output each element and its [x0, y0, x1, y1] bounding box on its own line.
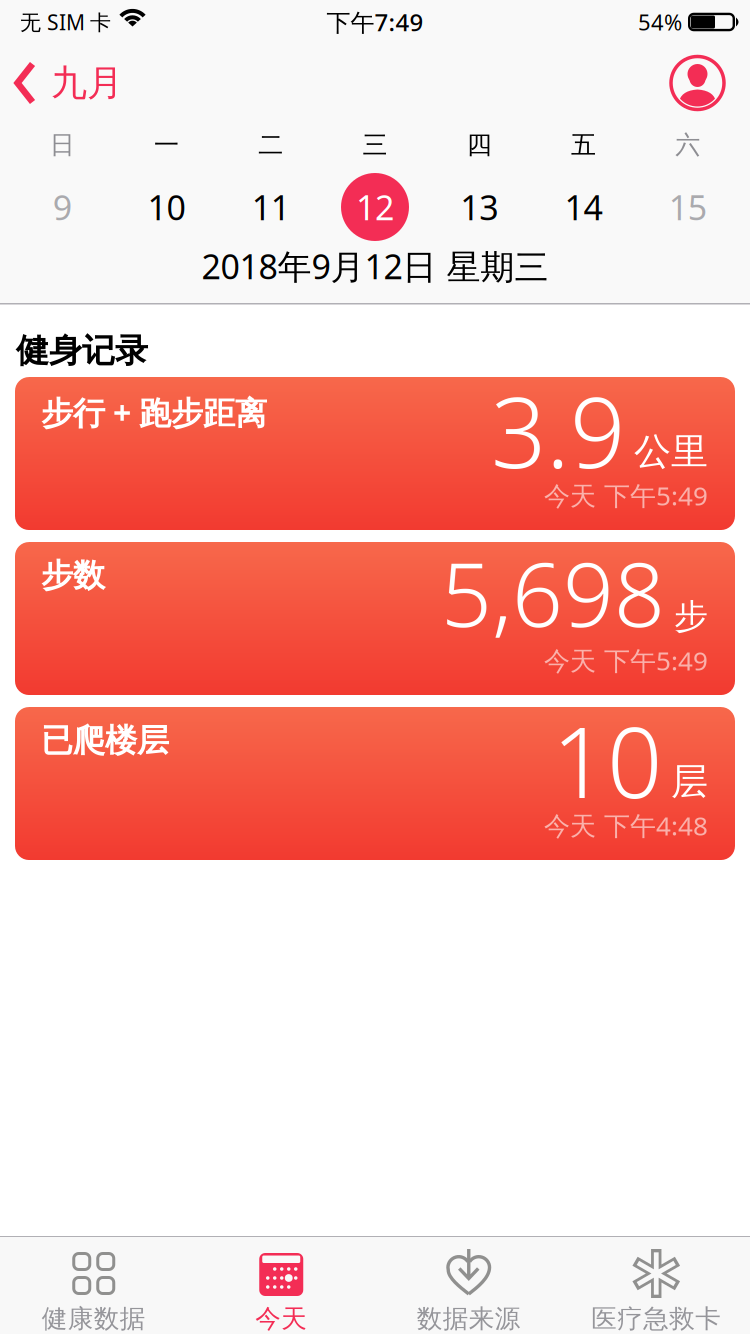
staticText: 9 — [53, 184, 72, 230]
staticText: 健康数据 — [42, 1303, 146, 1334]
staticText: 11 — [252, 184, 290, 230]
staticText: 一 — [154, 130, 179, 160]
button[interactable]: 11 — [219, 169, 323, 245]
staticText: 5,698 — [441, 533, 665, 651]
staticText: 2018年9月12日 星期三 — [201, 243, 548, 289]
staticText: 今天 下午5:49 — [544, 643, 708, 677]
staticText: 三 — [362, 130, 387, 160]
button[interactable]: 12 — [323, 169, 427, 245]
staticText: 13 — [460, 184, 498, 230]
button[interactable]: 今天 — [187, 1237, 375, 1334]
button[interactable]: 13 — [427, 169, 531, 245]
button[interactable]: 健康数据 — [0, 1237, 187, 1334]
staticText: 14 — [565, 184, 603, 230]
staticText: 10 — [552, 696, 662, 825]
button[interactable]: 步行 + 跑步距离 — [15, 377, 735, 530]
staticText: 五 — [571, 130, 596, 160]
staticText: 15 — [669, 184, 707, 230]
staticText: 12 — [356, 184, 394, 230]
staticText: 公里 — [634, 429, 708, 474]
button[interactable]: 已爬楼层 — [15, 707, 735, 860]
staticText: 六 — [675, 130, 700, 160]
staticText: 下午7:49 — [326, 6, 423, 38]
button[interactable]: 医疗急救卡 — [562, 1237, 750, 1334]
button[interactable]: 10 — [114, 169, 219, 245]
staticText: 四 — [467, 130, 492, 160]
button[interactable]: 9 — [10, 169, 114, 245]
staticText: 已爬楼层 — [41, 721, 169, 760]
button[interactable]: 健康资料 — [671, 56, 750, 109]
staticText: 步 — [674, 595, 708, 637]
staticText: 无 SIM 卡 — [20, 8, 111, 36]
staticText: 10 — [147, 184, 185, 230]
staticText: 日 — [50, 130, 75, 160]
button[interactable]: 九月 — [0, 61, 123, 105]
button[interactable]: 15 — [636, 169, 740, 245]
staticText: 九月 — [51, 61, 123, 105]
staticText: 步行 + 跑步距离 — [41, 391, 267, 433]
staticText: 今天 — [255, 1303, 307, 1334]
staticText: 医疗急救卡 — [591, 1303, 721, 1334]
staticText: 步数 — [41, 556, 105, 595]
staticText: 二 — [258, 130, 283, 160]
staticText: 3.9 — [491, 366, 625, 495]
staticText: 今天 下午5:49 — [544, 478, 708, 512]
staticText: 今天 下午4:48 — [544, 808, 708, 842]
staticText: 层 — [671, 759, 708, 804]
staticText: 健身记录 — [16, 330, 148, 371]
staticText: 数据来源 — [417, 1303, 521, 1334]
staticText: 54% — [638, 7, 682, 37]
button[interactable]: 数据来源 — [375, 1237, 562, 1334]
button[interactable]: 步数 — [15, 542, 735, 695]
button[interactable]: 14 — [531, 169, 636, 245]
